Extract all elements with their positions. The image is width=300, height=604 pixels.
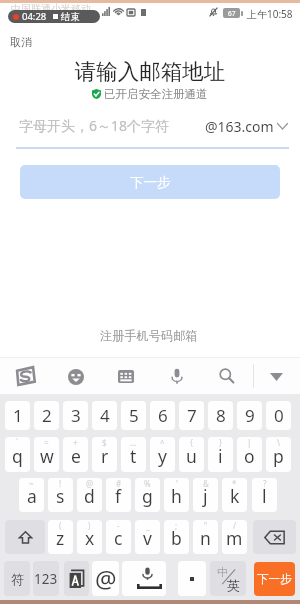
staticText: v	[143, 526, 152, 550]
button[interactable]: Sogou input	[15, 366, 36, 386]
button[interactable]: !	[48, 478, 73, 512]
staticText: _	[146, 520, 150, 531]
staticText: g	[142, 484, 153, 508]
button[interactable]: 4	[92, 401, 117, 430]
button[interactable]: +	[63, 437, 88, 472]
staticText: 中国联通小米移动	[11, 2, 91, 15]
staticText: 下一步	[130, 174, 171, 191]
button[interactable]: 123	[33, 561, 59, 596]
staticText: *	[232, 478, 237, 489]
button[interactable]: 符	[4, 561, 30, 596]
staticText: i	[218, 444, 223, 468]
button[interactable]: &	[193, 478, 218, 512]
staticText: 2	[42, 404, 52, 427]
button[interactable]: 0	[266, 401, 291, 430]
button[interactable]: *	[222, 478, 247, 512]
button[interactable]: (	[48, 520, 73, 554]
staticText: (	[59, 520, 62, 531]
staticText: ?	[263, 478, 267, 489]
button[interactable]: =	[34, 437, 59, 472]
staticText: #	[116, 478, 122, 489]
button[interactable]: 7	[179, 401, 204, 430]
staticText: 8	[216, 404, 226, 427]
button[interactable]: `	[5, 437, 30, 472]
button[interactable]: }	[208, 437, 233, 472]
button[interactable]: %	[135, 478, 160, 512]
button[interactable]: Hide keyboard	[270, 373, 283, 381]
staticText: @	[95, 562, 117, 595]
button[interactable]: \	[266, 437, 291, 472]
button[interactable]: Shift	[5, 520, 45, 554]
button[interactable]: 8	[208, 401, 233, 430]
button[interactable]: Voice input	[171, 368, 183, 384]
button[interactable]: 6	[150, 401, 175, 430]
staticText: )	[88, 520, 91, 531]
staticText: ;	[175, 520, 178, 531]
button[interactable]: $	[92, 437, 117, 472]
button[interactable]: -	[106, 520, 131, 554]
staticText: u	[186, 444, 197, 468]
staticText: 结束	[61, 11, 80, 23]
button[interactable]: "	[193, 520, 218, 554]
staticText: "	[204, 520, 208, 531]
staticText: m	[226, 526, 243, 550]
button[interactable]: {	[179, 437, 204, 472]
staticText: @163.com	[205, 117, 274, 136]
button[interactable]: #	[106, 478, 131, 512]
button[interactable]: 2	[34, 401, 59, 430]
staticText: +	[73, 437, 78, 448]
staticText: 请输入邮箱地址	[0, 58, 300, 85]
button[interactable]: _	[135, 520, 160, 554]
button[interactable]: Search	[219, 368, 234, 383]
button[interactable]: Emoji	[68, 369, 84, 385]
button[interactable]: Space	[122, 561, 166, 596]
staticText: 符	[11, 571, 24, 587]
staticText: $	[102, 437, 107, 448]
button[interactable]: ~	[19, 478, 44, 512]
staticText: `	[16, 437, 19, 448]
staticText: 取消	[10, 35, 32, 49]
button[interactable]: Period	[178, 561, 206, 596]
button[interactable]: 下一步	[20, 165, 280, 199]
button[interactable]: 取消	[4, 31, 38, 53]
button[interactable]: …	[121, 437, 146, 472]
staticText: 5	[129, 404, 139, 427]
button[interactable]: 3	[63, 401, 88, 430]
staticText: @	[86, 478, 94, 489]
button[interactable]: Language toggle	[210, 561, 246, 596]
staticText: a	[27, 484, 37, 508]
button[interactable]: |	[237, 437, 262, 472]
button[interactable]: @	[92, 561, 119, 596]
button[interactable]: @	[77, 478, 102, 512]
button[interactable]: 注册手机号码邮箱	[94, 323, 204, 348]
staticText: |	[247, 437, 252, 448]
button[interactable]: 1	[5, 401, 30, 430]
button[interactable]: /	[222, 520, 247, 554]
button[interactable]: Backspace	[253, 520, 296, 554]
staticText: j	[203, 484, 208, 508]
staticText: 已开启安全注册通道	[104, 87, 208, 101]
staticText: l	[262, 484, 267, 508]
staticText: s	[56, 484, 65, 508]
staticText: 英	[227, 577, 240, 593]
button[interactable]: 5	[121, 401, 146, 430]
button[interactable]: '	[164, 478, 189, 512]
button[interactable]: Input mode	[64, 561, 89, 596]
button[interactable]: ^	[150, 437, 175, 472]
button[interactable]: 9	[237, 401, 262, 430]
button[interactable]: ;	[164, 520, 189, 554]
staticText: &	[203, 478, 209, 489]
staticText: /	[233, 520, 236, 531]
staticText: f	[115, 484, 122, 508]
button[interactable]: )	[77, 520, 102, 554]
staticText: e	[71, 444, 81, 468]
staticText: 1	[13, 404, 23, 427]
staticText: c	[114, 526, 123, 550]
button[interactable]: 下一步	[254, 562, 295, 596]
staticText: =	[44, 437, 49, 448]
staticText: b	[171, 526, 182, 550]
button[interactable]: ?	[252, 478, 277, 512]
button[interactable]: Keyboard	[118, 370, 134, 383]
staticText: 04:28	[22, 10, 47, 23]
staticText: 字母开头，6～18个字符	[19, 116, 170, 135]
